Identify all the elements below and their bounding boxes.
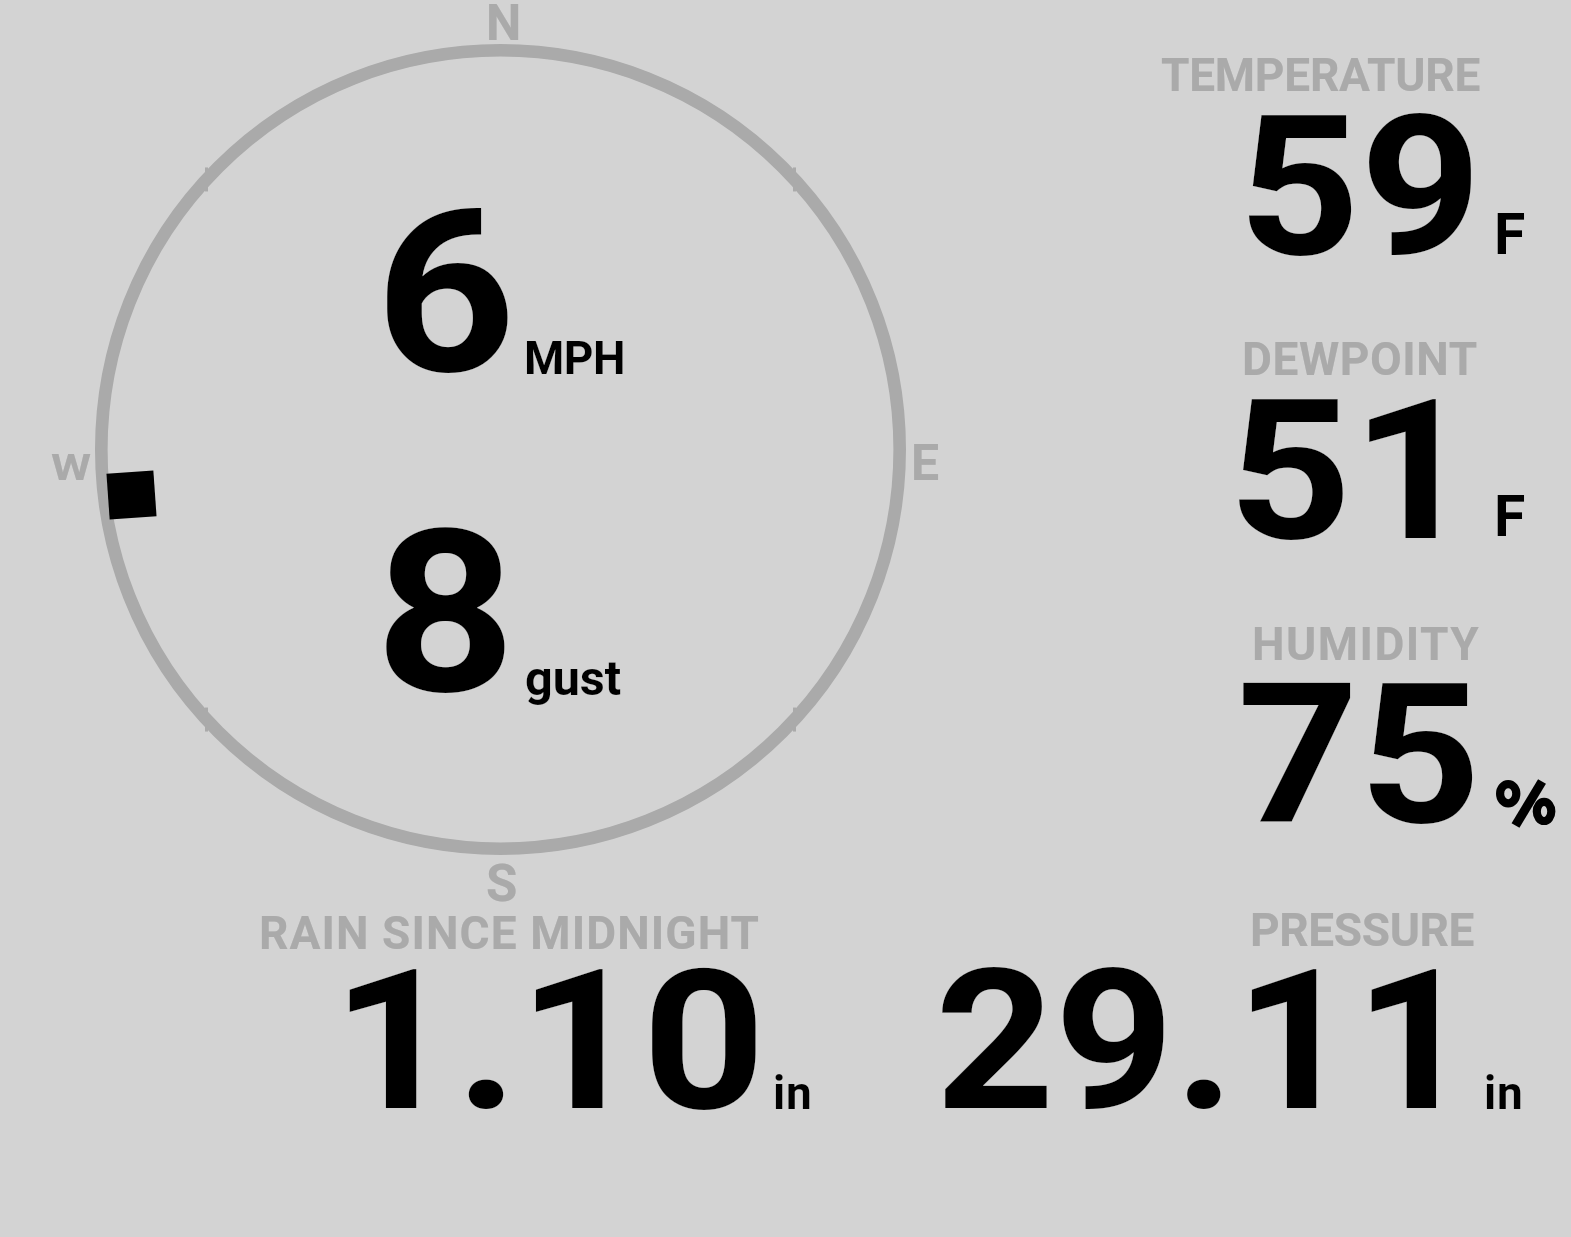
staticText: W	[51, 445, 91, 489]
staticText: HUMIDITY	[1252, 617, 1481, 671]
staticText: gust	[525, 650, 622, 707]
staticText: 8	[375, 482, 517, 746]
staticText: 59	[1238, 73, 1482, 298]
staticText: 1.10	[332, 927, 766, 1142]
staticText: F	[1494, 483, 1526, 550]
staticText: N	[486, 0, 522, 53]
button[interactable]: Pressure 29.11 inches	[930, 900, 1540, 1115]
staticText: in	[1484, 1066, 1524, 1120]
staticText: DEWPOINT	[1242, 332, 1478, 386]
staticText: in	[773, 1066, 813, 1120]
button[interactable]: Wind speed 6 miles per hour, gusting 8	[360, 150, 650, 710]
button[interactable]: Temperature 59 degrees Fahrenheit	[1150, 40, 1560, 265]
button[interactable]: Rain since midnight 1.10 inches	[250, 900, 820, 1115]
staticText: E	[911, 434, 940, 493]
staticText: 51	[1228, 357, 1475, 579]
staticText: S	[486, 854, 518, 914]
staticText: MPH	[524, 331, 626, 385]
staticText: TEMPERATURE	[1161, 48, 1481, 102]
staticText: RAIN SINCE MIDNIGHT	[259, 906, 761, 960]
other: Wind direction marker	[108, 472, 155, 518]
button[interactable]: Wind direction compass, wind from the we…	[95, 44, 906, 855]
button[interactable]: Dewpoint 51 degrees Fahrenheit	[1150, 325, 1560, 547]
staticText: 29.11	[935, 927, 1475, 1142]
staticText: 75	[1237, 641, 1481, 866]
staticText: PRESSURE	[1250, 903, 1475, 957]
staticText: 6	[375, 162, 517, 426]
button[interactable]: Humidity 75 percent	[1150, 610, 1560, 835]
staticText: F	[1494, 201, 1526, 268]
